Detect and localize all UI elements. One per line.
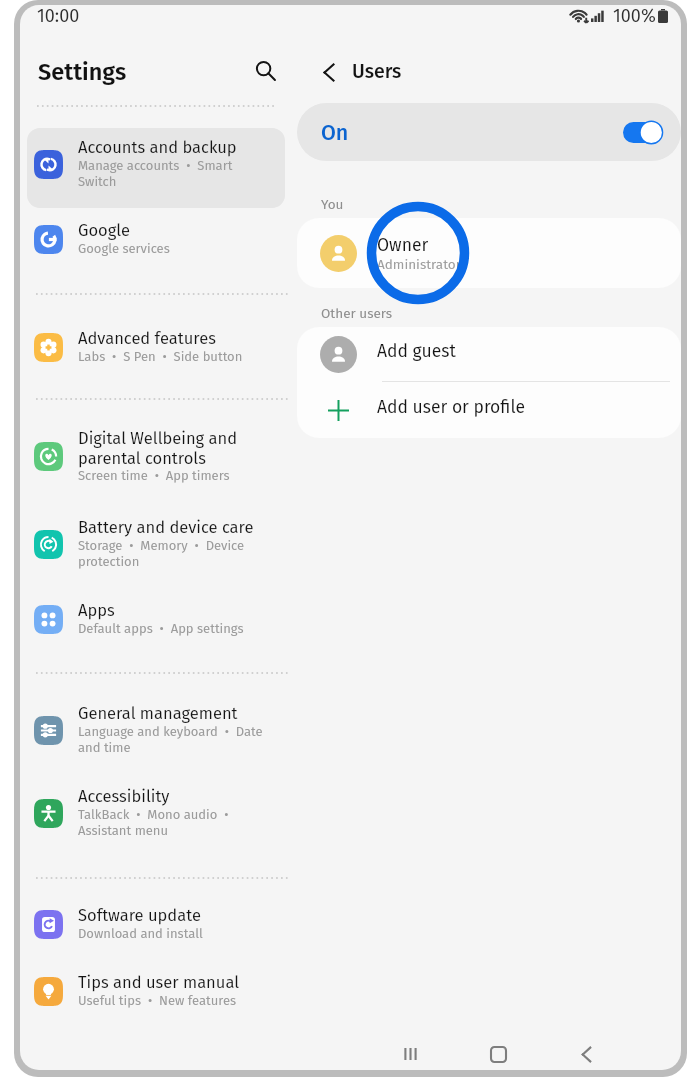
button[interactable]: Back <box>313 56 345 88</box>
staticText: On <box>321 120 349 146</box>
button[interactable]: Accounts and backup <box>27 128 285 208</box>
staticText: TalkBack • Mono audio • Assistant menu <box>78 807 270 839</box>
button[interactable]: Advanced features <box>27 319 285 383</box>
staticText: Manage accounts • Smart Switch <box>78 158 270 190</box>
staticText: 10:00 <box>37 5 80 27</box>
staticText: Owner <box>377 235 429 256</box>
button[interactable]: On <box>297 103 681 161</box>
button[interactable]: Tips and user manual <box>27 963 285 1027</box>
staticText: Battery and device care <box>78 518 254 538</box>
staticText: Google <box>78 221 131 241</box>
staticText: Add guest <box>377 341 456 362</box>
staticText: Accessibility <box>78 787 170 807</box>
button[interactable]: Add user or profile <box>297 382 681 438</box>
staticText: Tips and user manual <box>78 973 240 993</box>
button[interactable]: Add guest <box>297 327 681 381</box>
button[interactable]: Back <box>542 1042 630 1066</box>
staticText: Google services <box>78 241 170 257</box>
staticText: General management <box>78 704 238 724</box>
button[interactable]: Recents <box>366 1042 454 1066</box>
staticText: Other users <box>321 305 393 321</box>
button[interactable]: Home <box>454 1042 542 1066</box>
staticText: Advanced features <box>78 329 216 349</box>
button[interactable]: Apps <box>27 591 285 655</box>
button[interactable]: Battery and device care <box>27 508 285 588</box>
button[interactable]: Digital Wellbeing and parental controls <box>27 419 285 502</box>
staticText: Software update <box>78 906 201 926</box>
staticText: Add user or profile <box>377 397 525 418</box>
button[interactable]: Google <box>27 211 285 275</box>
staticText: Digital Wellbeing and parental controls <box>78 429 270 468</box>
button[interactable]: Accessibility <box>27 777 285 857</box>
staticText: Download and install <box>78 926 203 942</box>
staticText: Users <box>352 60 402 83</box>
staticText: 100% <box>613 5 656 27</box>
staticText: You <box>321 196 344 212</box>
staticText: Screen time • App timers <box>78 468 230 484</box>
button[interactable]: Owner <box>297 218 681 288</box>
staticText: Language and keyboard • Date and time <box>78 724 270 756</box>
staticText: Administrator <box>377 256 461 272</box>
staticText: Settings <box>38 58 127 86</box>
staticText: Apps <box>78 601 115 621</box>
staticText: Default apps • App settings <box>78 621 244 637</box>
button[interactable]: Search <box>248 53 282 87</box>
staticText: Labs • S Pen • Side button <box>78 349 243 365</box>
button[interactable]: Software update <box>27 896 285 960</box>
staticText: Useful tips • New features <box>78 993 237 1009</box>
button[interactable]: General management <box>27 694 285 774</box>
staticText: Storage • Memory • Device protection <box>78 538 270 570</box>
staticText: Accounts and backup <box>78 138 237 158</box>
